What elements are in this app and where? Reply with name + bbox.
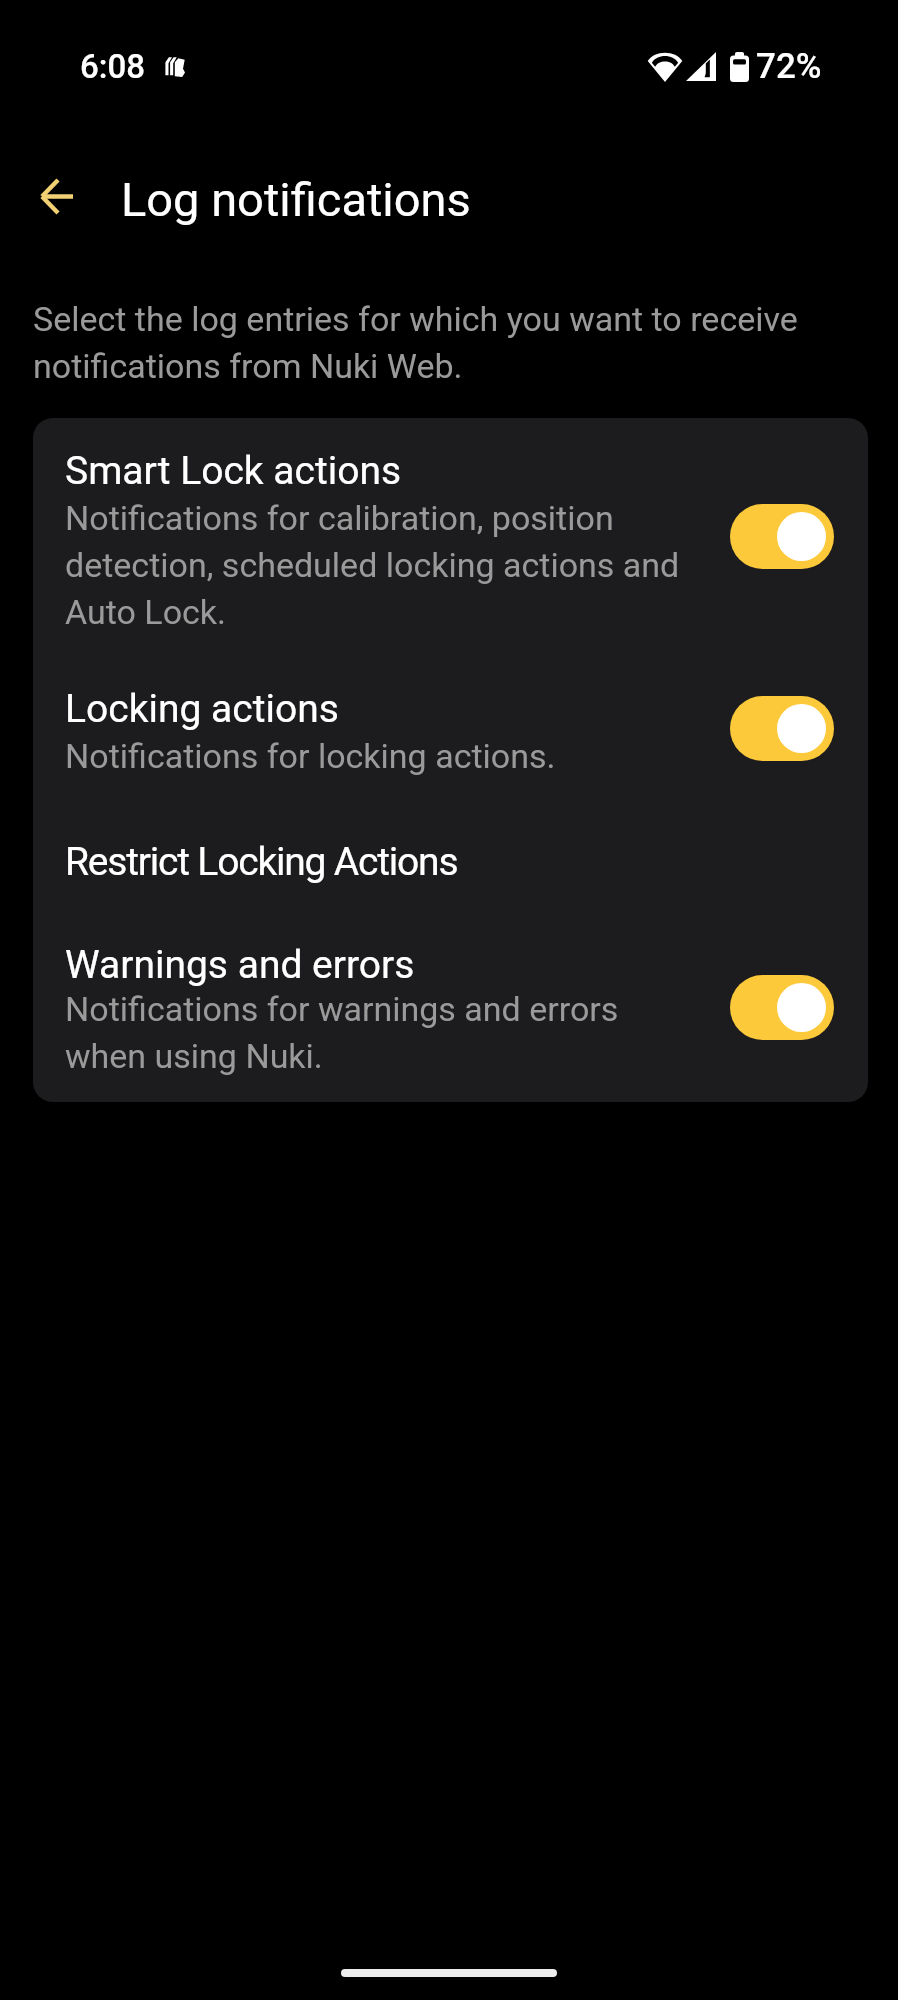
- staticText: 6:08: [80, 47, 145, 86]
- staticText: Warnings and errors: [65, 942, 725, 988]
- staticText: Locking actions: [65, 686, 725, 732]
- button[interactable]: Restrict Locking Actions: [33, 820, 868, 925]
- button[interactable]: Warnings and errors, on: [730, 975, 834, 1040]
- staticText: 72%: [756, 46, 822, 87]
- button[interactable]: Smart Lock actions: [33, 418, 868, 668]
- button[interactable]: Locking actions: [33, 668, 868, 820]
- staticText: Select the log entries for which you wan…: [33, 294, 873, 388]
- staticText: Log notifications: [121, 172, 471, 227]
- button[interactable]: Navigate up: [22, 162, 90, 230]
- staticText: Notifications for calibration, position …: [65, 493, 705, 634]
- staticText: Notifications for locking actions.: [65, 731, 705, 778]
- staticText: Restrict Locking Actions: [65, 839, 725, 885]
- staticText: Notifications for warnings and errors wh…: [65, 984, 705, 1078]
- button[interactable]: Smart Lock actions, on: [730, 504, 834, 569]
- staticText: Smart Lock actions: [65, 448, 725, 494]
- button[interactable]: Locking actions, on: [730, 696, 834, 761]
- button[interactable]: Warnings and errors: [33, 925, 868, 1102]
